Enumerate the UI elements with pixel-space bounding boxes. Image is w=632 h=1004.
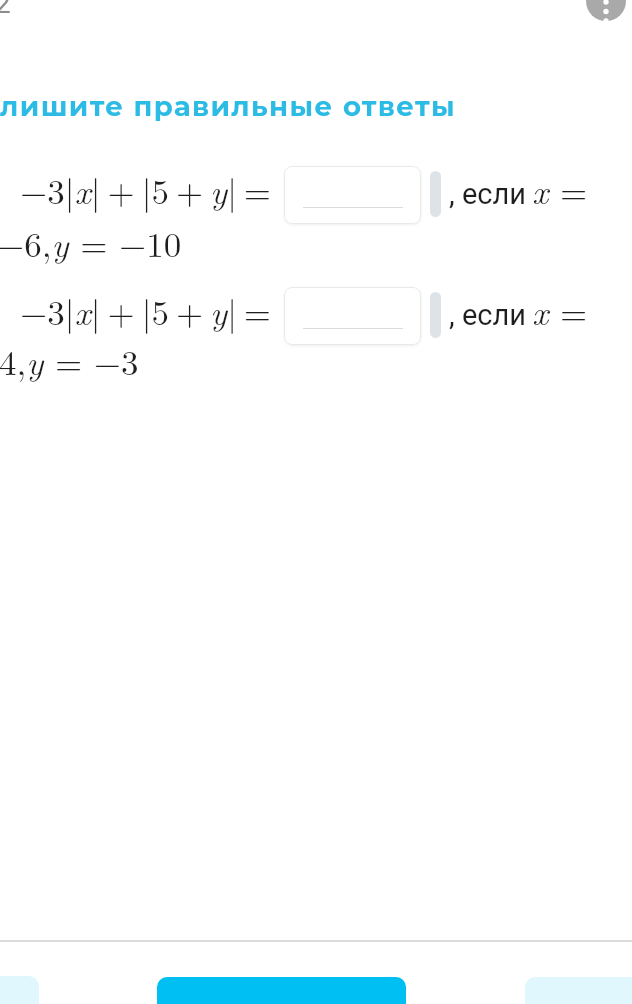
staticText: x = xyxy=(532,286,588,336)
staticText: −6,y = −10 xyxy=(0,218,182,268)
staticText: 2 xyxy=(0,0,11,20)
staticText: −3|x| + |5 + y| = xyxy=(20,286,272,336)
staticText: 4,y = −3 xyxy=(0,336,139,386)
button[interactable]: Answer field xyxy=(284,166,421,224)
button[interactable]: More options xyxy=(586,0,626,21)
staticText: −3|x| + |5 + y| = xyxy=(20,165,272,215)
staticText: лишите правильные ответы xyxy=(0,89,457,123)
staticText: x = xyxy=(532,165,588,215)
button[interactable]: Previous xyxy=(0,976,39,1004)
staticText: , если xyxy=(449,177,534,211)
staticText: , если xyxy=(449,298,534,332)
button[interactable]: Check xyxy=(157,977,406,1004)
button[interactable]: Answer field xyxy=(284,287,421,345)
